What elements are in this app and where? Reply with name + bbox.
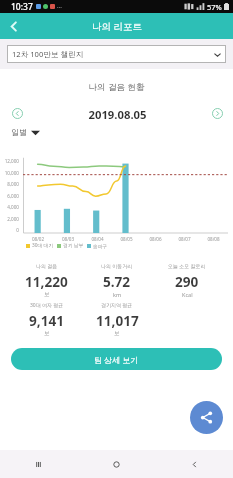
staticText: 보 (44, 291, 50, 298)
staticText: 10:37 (11, 1, 33, 13)
staticText: km (113, 291, 122, 298)
staticText: 57% (207, 2, 222, 12)
staticText: 2,000 (0, 216, 19, 222)
staticText: Kcal (182, 291, 193, 298)
staticText: 오늘 소모 칼로리 (168, 263, 206, 270)
staticText: 12차 100만보 챌린지 (12, 49, 84, 59)
staticText: 290 (175, 272, 199, 291)
button[interactable]: 일별 (11, 126, 40, 138)
staticText: 6,000 (0, 193, 19, 199)
staticText: 08/08 (199, 236, 228, 242)
staticText: 2019.08.05 (24, 107, 211, 120)
staticText: 0 (0, 227, 19, 233)
staticText: ··· (57, 3, 62, 11)
staticText: 30대 대기 (32, 242, 54, 249)
button[interactable]: 팀 상세 보기 (11, 348, 222, 370)
button[interactable]: Back (0, 13, 26, 39)
button[interactable]: Back (155, 450, 233, 478)
staticText: 나의 리포트 (92, 20, 142, 33)
staticText: 11,220 (25, 272, 68, 291)
staticText: 나의 걸음 현황 (0, 81, 233, 93)
staticText: 08/02 (23, 236, 53, 242)
staticText: 일별 (11, 127, 27, 137)
staticText: 나의 걸음 (36, 263, 58, 270)
staticText: 08/04 (83, 236, 112, 242)
staticText: 08/05 (112, 236, 141, 242)
button[interactable]: 12차 100만보 챌린지 (7, 45, 226, 63)
staticText: 경기 남부 (63, 242, 84, 249)
staticText: 송파구 (93, 243, 108, 249)
button[interactable]: Home (77, 450, 155, 478)
staticText: 30대 여자 평균 (30, 302, 64, 309)
staticText: 10,000 (0, 170, 19, 176)
staticText: 8,000 (0, 181, 19, 187)
staticText: 12,000 (0, 158, 19, 164)
staticText: 08/07 (170, 236, 199, 242)
staticText: 4,000 (0, 204, 19, 210)
staticText: 나의 이동거리 (101, 263, 133, 270)
staticText: 5.72 (103, 272, 131, 291)
staticText: 11,017 (96, 311, 139, 330)
staticText: 08/06 (141, 236, 170, 242)
button[interactable]: Recents (0, 450, 77, 478)
button[interactable]: Previous day (11, 107, 24, 120)
staticText: 보 (114, 330, 120, 337)
staticText: 보 (44, 330, 50, 337)
staticText: 팀 상세 보기 (94, 354, 139, 365)
button[interactable]: Share (190, 401, 223, 434)
staticText: 9,141 (29, 311, 64, 330)
staticText: 경기지역 평균 (101, 302, 133, 309)
staticText: 08/03 (53, 236, 83, 242)
button[interactable]: Next day (211, 107, 224, 120)
